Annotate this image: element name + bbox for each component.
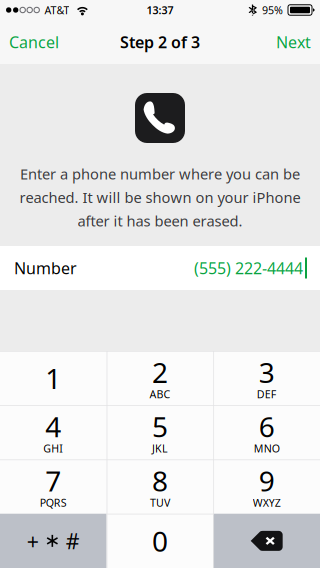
button[interactable]: 4 — [0, 405, 107, 459]
staticText: AT&T — [44, 3, 69, 17]
staticText: Enter a phone number where you can be — [20, 164, 300, 183]
staticText: 95% — [262, 3, 283, 17]
staticText: 7 — [45, 462, 61, 499]
staticText: 3 — [259, 353, 275, 391]
button[interactable]: Cancel — [0, 20, 68, 64]
staticText: TUV — [150, 495, 170, 510]
staticText: PQRS — [40, 495, 67, 510]
staticText: 6 — [259, 408, 275, 445]
staticText: + — [27, 527, 39, 555]
button[interactable]: 1 — [0, 351, 107, 405]
staticText: WXYZ — [253, 495, 281, 510]
staticText: GHI — [43, 441, 63, 455]
staticText: Cancel — [9, 31, 59, 53]
staticText: JKL — [152, 441, 168, 455]
button[interactable]: 7 — [0, 459, 107, 514]
staticText: # — [66, 527, 80, 555]
button[interactable]: 2 — [107, 351, 213, 405]
button[interactable]: Symbols — [0, 514, 107, 568]
button[interactable]: 6 — [213, 405, 320, 459]
button[interactable]: 0 — [107, 514, 213, 568]
button[interactable]: Next — [267, 20, 320, 64]
button[interactable]: 8 — [107, 459, 213, 514]
staticText: 13:37 — [146, 3, 173, 17]
staticText: 4 — [45, 408, 61, 445]
staticText: 2 — [152, 353, 168, 391]
staticText: (555) 222-4444 — [194, 257, 303, 279]
staticText: Number — [14, 257, 77, 279]
staticText: 0 — [152, 522, 168, 559]
button[interactable]: Delete — [213, 514, 320, 568]
staticText: ABC — [149, 387, 170, 401]
button[interactable]: 3 — [213, 351, 320, 405]
button[interactable]: 9 — [213, 459, 320, 514]
staticText: MNO — [254, 441, 280, 455]
button[interactable]: 5 — [107, 405, 213, 459]
staticText: 8 — [152, 462, 168, 499]
staticText: 5 — [152, 408, 168, 445]
staticText: 9 — [259, 462, 275, 499]
staticText: reached. It will be shown on your iPhone — [19, 187, 300, 207]
staticText: DEF — [257, 387, 277, 401]
staticText: 1 — [45, 359, 61, 397]
staticText: Step 2 of 3 — [120, 31, 200, 53]
staticText: after it has been erased. — [77, 211, 242, 230]
staticText: Next — [276, 31, 311, 53]
